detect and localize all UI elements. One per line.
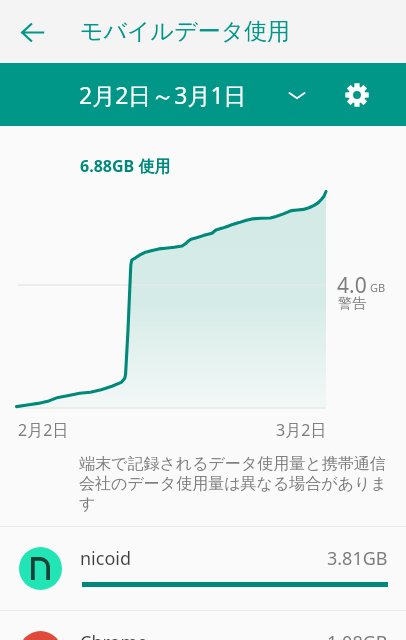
staticText: 6.88GB 使用 [80, 155, 171, 177]
staticText: nicoid [80, 546, 132, 571]
button[interactable]: C [0, 611, 406, 640]
button[interactable]: nicoid [0, 527, 406, 610]
staticText: 警告 [338, 295, 366, 313]
button[interactable]: Back [10, 10, 54, 54]
staticText: 1.08GB [327, 630, 388, 640]
staticText: 2月2日 [18, 419, 69, 441]
button[interactable]: 2月2日～3月1日 [0, 79, 315, 110]
staticText: 端末で記録されるデータ使用量と携帯通信会社のデータ使用量は異なる場合があります [79, 454, 391, 514]
staticText: 3.81GB [327, 546, 388, 571]
staticText: モバイルデータ使用 [80, 17, 291, 46]
button[interactable]: Settings [336, 74, 378, 116]
staticText: 3月2日 [276, 419, 327, 441]
staticText: 4.0 [337, 271, 367, 300]
staticText: 2月2日～3月1日 [79, 79, 247, 110]
staticText: Chrome [80, 630, 148, 640]
staticText: GB [370, 280, 386, 295]
